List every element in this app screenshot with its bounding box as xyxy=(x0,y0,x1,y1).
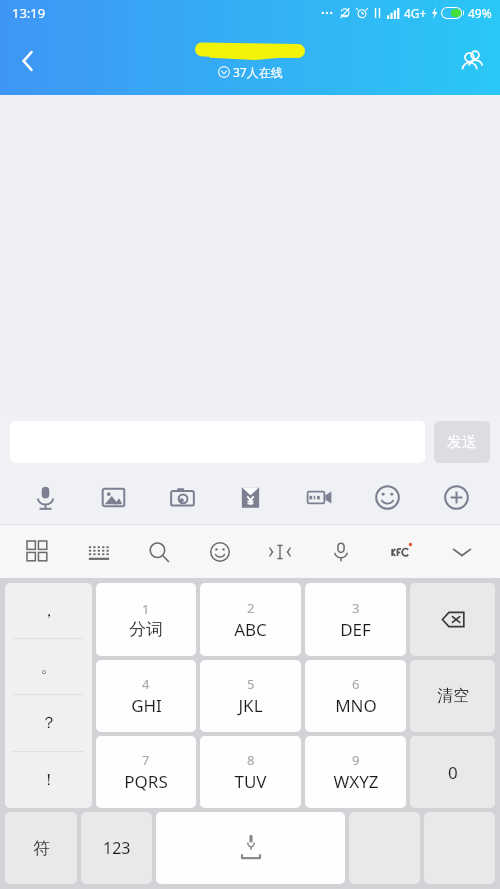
button[interactable]: Camera xyxy=(158,473,206,521)
button[interactable]: 6 xyxy=(305,660,406,732)
staticText: 4G+ xyxy=(404,5,427,21)
button[interactable]: 5 xyxy=(200,660,301,732)
button[interactable]: Space xyxy=(156,812,345,884)
staticText: 符 xyxy=(33,838,50,859)
staticText: 分词 xyxy=(129,619,163,640)
button[interactable]: More xyxy=(432,473,480,521)
button[interactable]: Voice input xyxy=(319,530,363,574)
button[interactable]: KFC xyxy=(379,530,423,574)
button[interactable]: 4 xyxy=(96,660,196,732)
button[interactable]: Backspace xyxy=(410,583,495,656)
button[interactable]: Emoji xyxy=(198,530,242,574)
staticText: 5 xyxy=(247,675,255,693)
staticText: 9 xyxy=(352,751,360,769)
button[interactable]: 8 xyxy=(200,736,301,808)
button[interactable]: 9 xyxy=(305,736,406,808)
staticText: ABC xyxy=(234,618,267,641)
staticText: ？ xyxy=(41,713,57,733)
staticText: DEF xyxy=(340,618,371,641)
staticText: 清空 xyxy=(437,686,469,706)
staticText: 0 xyxy=(448,761,458,784)
button[interactable]: Members xyxy=(444,33,500,89)
staticText: ！ xyxy=(41,770,57,790)
staticText: 1 xyxy=(142,600,150,618)
button[interactable]: 123 xyxy=(81,812,152,884)
button[interactable]: 2 xyxy=(200,583,301,656)
staticText: 2 xyxy=(247,599,255,617)
staticText: 49% xyxy=(468,5,492,21)
button[interactable]: 3 xyxy=(305,583,406,656)
button[interactable]: Search xyxy=(137,530,181,574)
button[interactable]: 37人在线 xyxy=(200,41,300,80)
button[interactable]: GIF xyxy=(295,473,343,521)
staticText: ， xyxy=(41,601,57,621)
staticText: 7 xyxy=(142,751,150,769)
button[interactable]: Voice message xyxy=(21,473,69,521)
button[interactable]: 0 xyxy=(410,736,495,808)
staticText: PQRS xyxy=(124,770,168,793)
staticText: 6 xyxy=(352,675,360,693)
staticText: 。 xyxy=(41,657,57,677)
staticText: 8 xyxy=(247,751,255,769)
staticText: 发送 xyxy=(447,433,477,452)
staticText: 123 xyxy=(103,837,131,859)
button[interactable]: 1 xyxy=(96,583,196,656)
staticText: MNO xyxy=(335,694,377,717)
staticText: GHI xyxy=(131,694,162,717)
staticText: WXYZ xyxy=(333,770,379,793)
button[interactable]: Apps xyxy=(16,530,60,574)
button[interactable]: 发送 xyxy=(434,421,490,463)
button[interactable]: 7 xyxy=(96,736,196,808)
button[interactable]: Back xyxy=(0,33,56,89)
button[interactable]: Red packet xyxy=(226,473,274,521)
button[interactable]: Edit cursor xyxy=(258,530,302,574)
staticText: TUV xyxy=(234,770,267,793)
button[interactable]: 清空 xyxy=(410,660,495,732)
staticText: 37人在线 xyxy=(233,64,283,80)
button[interactable]: Photo xyxy=(89,473,137,521)
staticText: JKL xyxy=(238,694,263,717)
staticText: 3 xyxy=(352,599,360,617)
button[interactable]: 符 xyxy=(5,812,77,884)
button[interactable]: Keyboard layout xyxy=(77,530,121,574)
staticText: 13:19 xyxy=(12,4,46,22)
staticText: 4 xyxy=(142,675,150,693)
button[interactable]: Hide keyboard xyxy=(440,530,484,574)
button[interactable]: Emoji xyxy=(363,473,411,521)
button[interactable]: ， xyxy=(5,583,92,808)
